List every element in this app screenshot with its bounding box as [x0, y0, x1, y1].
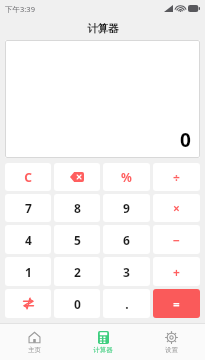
button[interactable]: C	[5, 163, 51, 191]
button[interactable]: .	[103, 289, 150, 318]
button[interactable]: 2	[54, 257, 100, 286]
staticText: +	[173, 264, 180, 280]
button[interactable]: −	[153, 225, 200, 254]
button[interactable]: Swap	[5, 289, 51, 318]
button[interactable]: ×	[153, 194, 200, 222]
staticText: 设置	[165, 346, 178, 354]
button[interactable]: 5	[54, 225, 100, 254]
button[interactable]: Backspace	[54, 163, 100, 191]
button[interactable]: 7	[5, 194, 51, 222]
staticText: 计算器	[87, 22, 119, 35]
button[interactable]: %	[103, 163, 150, 191]
staticText: C	[24, 169, 32, 185]
staticText: =	[173, 296, 180, 311]
staticText: 0	[74, 296, 81, 312]
button[interactable]: 6	[103, 225, 150, 254]
staticText: 7	[25, 200, 32, 216]
staticText: 5	[74, 232, 81, 248]
staticText: 9	[123, 200, 130, 216]
staticText: %	[121, 169, 132, 185]
button[interactable]: +	[153, 257, 200, 286]
staticText: 3	[123, 264, 130, 280]
button[interactable]: 设置	[137, 324, 205, 360]
staticText: 4	[25, 232, 32, 248]
button[interactable]: 9	[103, 194, 150, 222]
staticText: 8	[74, 200, 81, 216]
staticText: 1	[25, 264, 32, 280]
staticText: ×	[173, 200, 180, 216]
staticText: −	[173, 232, 180, 248]
staticText: 下午3:39	[5, 4, 35, 14]
button[interactable]: 3	[103, 257, 150, 286]
staticText: .	[125, 296, 129, 312]
button[interactable]: 1	[5, 257, 51, 286]
button[interactable]: 4	[5, 225, 51, 254]
button[interactable]: 主页	[0, 324, 69, 360]
staticText: 2	[74, 264, 81, 280]
staticText: 0	[180, 127, 191, 153]
staticText: ÷	[173, 169, 180, 185]
button[interactable]: 0	[54, 289, 100, 318]
button[interactable]: ÷	[153, 163, 200, 191]
staticText: 计算器	[93, 346, 113, 354]
button[interactable]: 计算器	[69, 324, 137, 360]
button[interactable]: 8	[54, 194, 100, 222]
staticText: 6	[123, 232, 130, 248]
staticText: 主页	[28, 346, 41, 354]
button[interactable]: =	[153, 289, 200, 318]
